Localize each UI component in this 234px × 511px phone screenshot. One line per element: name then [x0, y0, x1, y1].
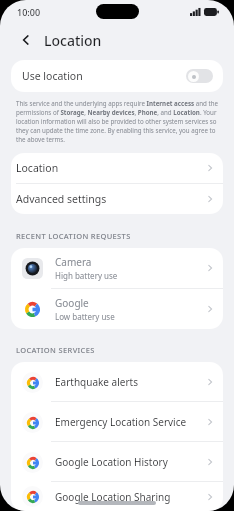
staticText: Emergency Location Service — [55, 415, 205, 429]
staticText: Use location — [22, 69, 83, 83]
staticText: High battery use — [55, 270, 118, 281]
staticText: Camera — [55, 255, 92, 269]
button[interactable]: Advanced settings — [11, 184, 223, 214]
button[interactable]: Camera — [11, 248, 223, 288]
button[interactable]: Earthquake alerts — [11, 362, 223, 401]
staticText: Google Location History — [55, 455, 205, 469]
staticText: LOCATION SERVICES — [16, 345, 95, 355]
button[interactable]: Use location — [11, 60, 223, 92]
button[interactable]: Google Location History — [11, 442, 223, 481]
staticText: Earthquake alerts — [55, 375, 205, 389]
button[interactable]: Google Location Sharing — [11, 482, 223, 511]
staticText: Google — [55, 296, 89, 310]
button[interactable]: Emergency Location Service — [11, 402, 223, 441]
staticText: 10:00 — [17, 6, 41, 18]
staticText: Location — [16, 161, 205, 175]
staticText: Low battery use — [55, 311, 115, 322]
staticText: This service and the underlying apps req… — [16, 99, 218, 144]
staticText: Advanced settings — [16, 192, 205, 206]
staticText: Location — [44, 31, 102, 50]
button[interactable]: Google — [11, 289, 223, 329]
button[interactable]: Location — [11, 153, 223, 183]
staticText: Google Location Sharing — [55, 490, 205, 504]
button[interactable]: Back — [15, 29, 37, 51]
staticText: RECENT LOCATION REQUESTS — [16, 231, 131, 241]
